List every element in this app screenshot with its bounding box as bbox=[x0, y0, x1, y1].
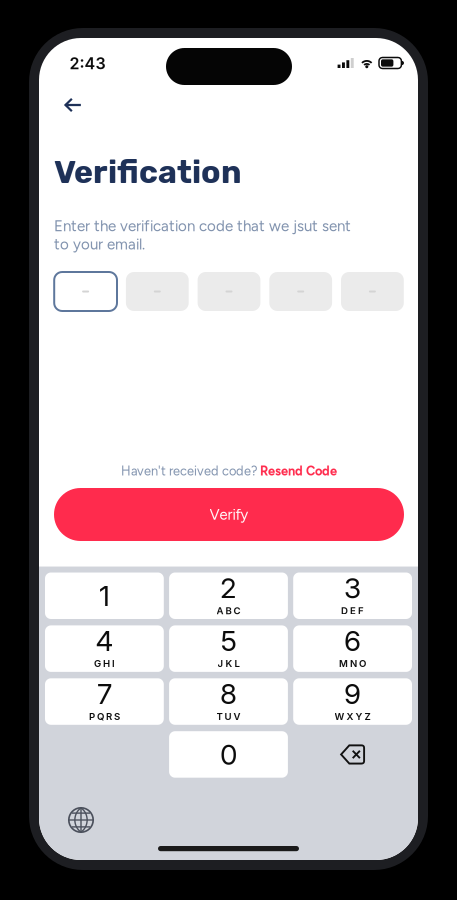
staticText: W X Y Z bbox=[335, 711, 371, 722]
staticText: 5 bbox=[220, 624, 236, 658]
staticText: J K L bbox=[217, 658, 239, 669]
button[interactable]: Delete bbox=[293, 731, 412, 778]
staticText: 1 bbox=[99, 579, 110, 613]
staticText: 9 bbox=[344, 677, 361, 711]
button[interactable]: 0 bbox=[169, 731, 288, 778]
staticText: 2:43 bbox=[69, 54, 105, 73]
staticText: 6 bbox=[344, 624, 361, 658]
button[interactable] bbox=[54, 272, 117, 311]
staticText: Enter the verification code that we jsut… bbox=[54, 217, 351, 253]
staticText: T U V bbox=[216, 711, 240, 722]
staticText: 8 bbox=[220, 677, 237, 711]
staticText: P Q R S bbox=[89, 711, 120, 722]
button[interactable]: 7 bbox=[45, 678, 164, 725]
staticText: M N O bbox=[339, 658, 366, 669]
staticText: Resend Code bbox=[260, 463, 337, 479]
button[interactable]: 2 bbox=[169, 572, 288, 619]
staticText: 7 bbox=[97, 677, 112, 711]
button[interactable]: Haven't received code? bbox=[54, 461, 404, 481]
button[interactable]: 9 bbox=[293, 678, 412, 725]
button[interactable] bbox=[269, 272, 332, 311]
staticText: G H I bbox=[94, 658, 115, 669]
button[interactable]: 5 bbox=[169, 625, 288, 672]
button[interactable]: 6 bbox=[293, 625, 412, 672]
button[interactable]: Verify bbox=[54, 488, 404, 541]
button[interactable]: 4 bbox=[45, 625, 164, 672]
button[interactable]: 8 bbox=[169, 678, 288, 725]
staticText: 3 bbox=[344, 571, 361, 605]
button[interactable]: 3 bbox=[293, 572, 412, 619]
staticText: Verification bbox=[54, 153, 242, 191]
staticText: 0 bbox=[220, 737, 237, 771]
button[interactable]: Switch keyboard bbox=[61, 800, 101, 840]
staticText: 4 bbox=[95, 624, 113, 658]
staticText: Haven't received code? bbox=[121, 463, 260, 479]
button[interactable]: Back bbox=[55, 90, 91, 120]
staticText: 2 bbox=[220, 571, 237, 605]
button[interactable] bbox=[341, 272, 404, 311]
staticText: A B C bbox=[216, 605, 240, 616]
staticText: D E F bbox=[341, 605, 364, 616]
button[interactable] bbox=[126, 272, 189, 311]
staticText: Verify bbox=[209, 506, 248, 523]
button[interactable]: 1 bbox=[45, 572, 164, 619]
